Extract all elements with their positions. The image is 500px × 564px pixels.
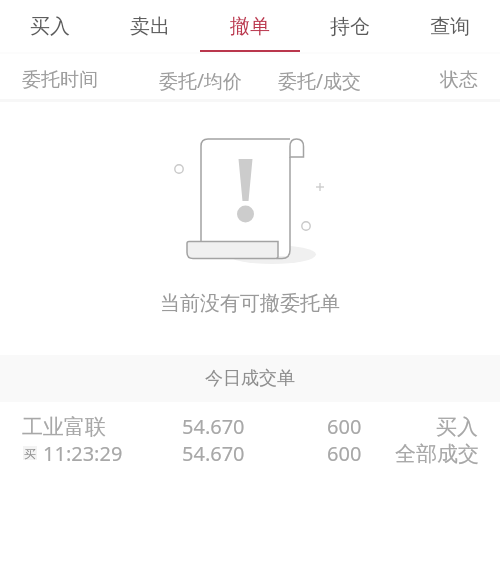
staticText: 54.670 — [182, 440, 245, 467]
staticText: 持仓 — [330, 14, 370, 39]
button[interactable]: 查询 — [400, 0, 500, 53]
button[interactable]: 持仓 — [300, 0, 400, 53]
button[interactable]: 撤单 — [200, 0, 300, 53]
staticText: 查询 — [430, 14, 470, 39]
button[interactable]: 买入 — [0, 0, 100, 53]
staticText: 全部成交 — [395, 441, 479, 467]
staticText: 委托时间 — [22, 68, 98, 92]
staticText: 买入 — [30, 14, 70, 39]
staticText: 600 — [327, 413, 362, 440]
staticText: 当前没有可撤委托单 — [160, 291, 340, 316]
staticText: 委托/均价 — [159, 68, 243, 94]
staticText: 11:23:29 — [43, 440, 123, 467]
staticText: 工业富联 — [22, 414, 106, 440]
staticText: 状态 — [440, 68, 478, 92]
button[interactable]: 工业富联 — [0, 414, 500, 468]
staticText: 撤单 — [230, 14, 270, 39]
staticText: 卖出 — [130, 14, 170, 39]
staticText: 买 — [24, 446, 36, 460]
staticText: 54.670 — [182, 413, 245, 440]
button[interactable]: 卖出 — [100, 0, 200, 53]
staticText: 委托/成交 — [278, 68, 362, 94]
staticText: 600 — [327, 440, 362, 467]
staticText: 买入 — [436, 414, 478, 440]
staticText: 今日成交单 — [205, 367, 295, 390]
